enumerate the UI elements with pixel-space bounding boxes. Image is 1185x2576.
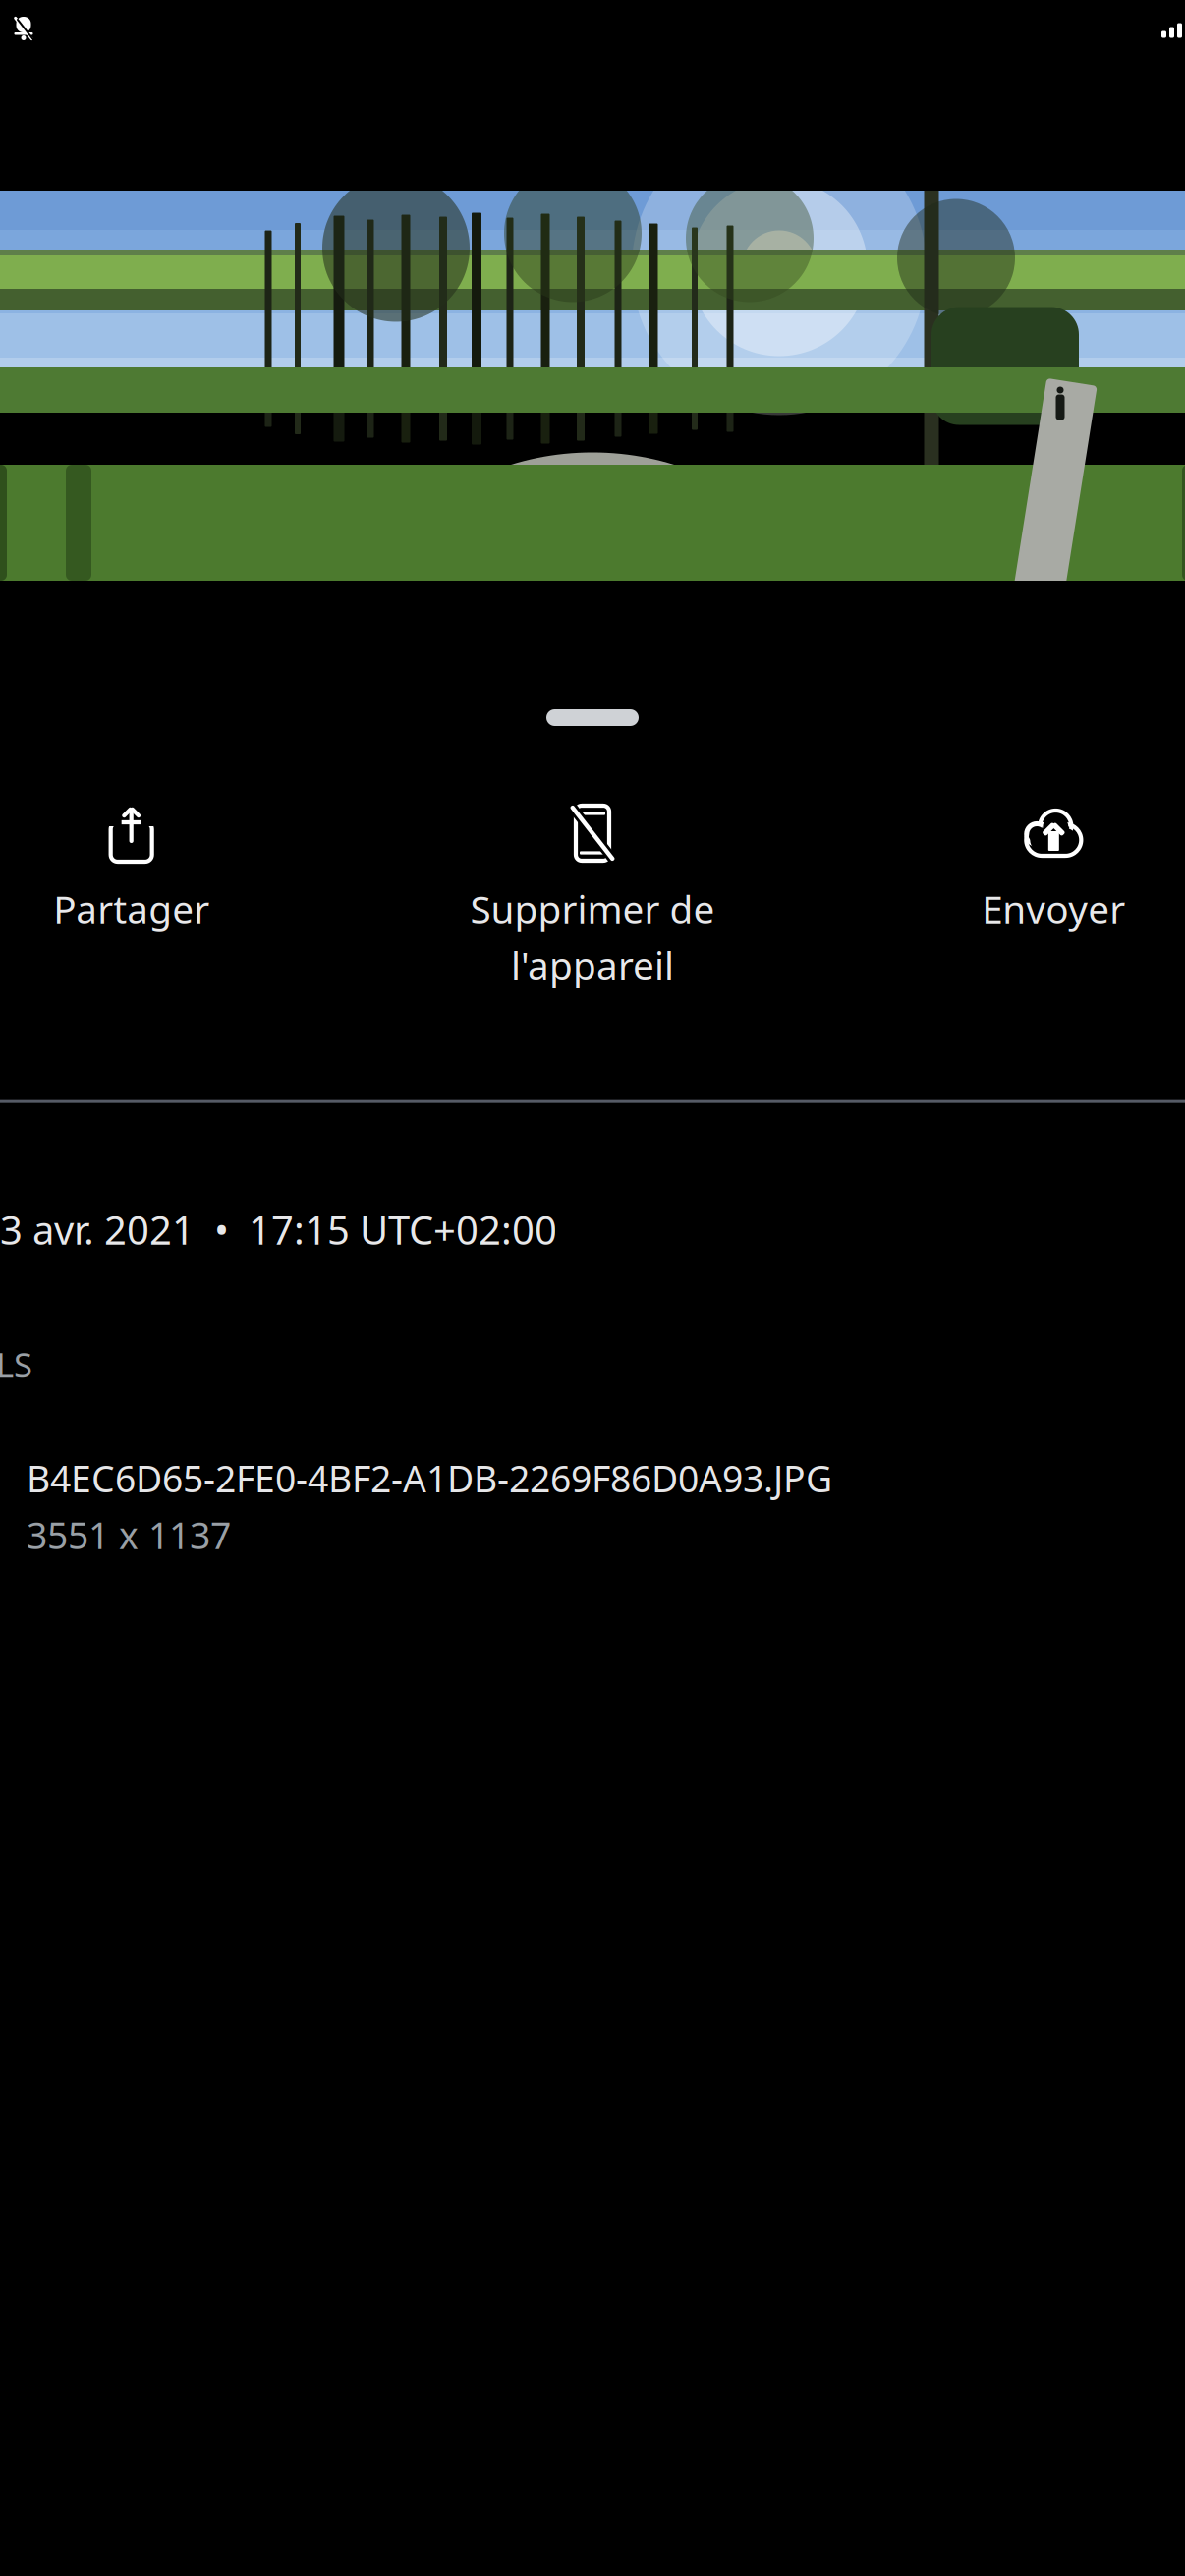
staticText: B4EC6D65-2FE0-4BF2-A1DB-2269F86D0A93.JPG <box>27 1454 832 1503</box>
staticText: 3551 x 1137 <box>27 1510 231 1559</box>
staticText: DÉTAILS <box>0 1342 32 1387</box>
button[interactable]: B4EC6D65-2FE0-4BF2-A1DB-2269F86D0A93.JPG <box>0 1450 1185 1563</box>
staticText: Partager <box>53 883 209 934</box>
button[interactable]: Partager <box>0 791 362 945</box>
staticText: Supprimer de <box>470 883 715 934</box>
button[interactable]: Supprimer de <box>362 791 823 1002</box>
button[interactable]: Envoyer <box>823 791 1185 945</box>
staticText: Envoyer <box>982 883 1125 934</box>
staticText: sam. 3 avr. 2021 • 17:15 UTC+02:00 <box>0 1203 557 1255</box>
staticText: l'appareil <box>511 940 674 990</box>
